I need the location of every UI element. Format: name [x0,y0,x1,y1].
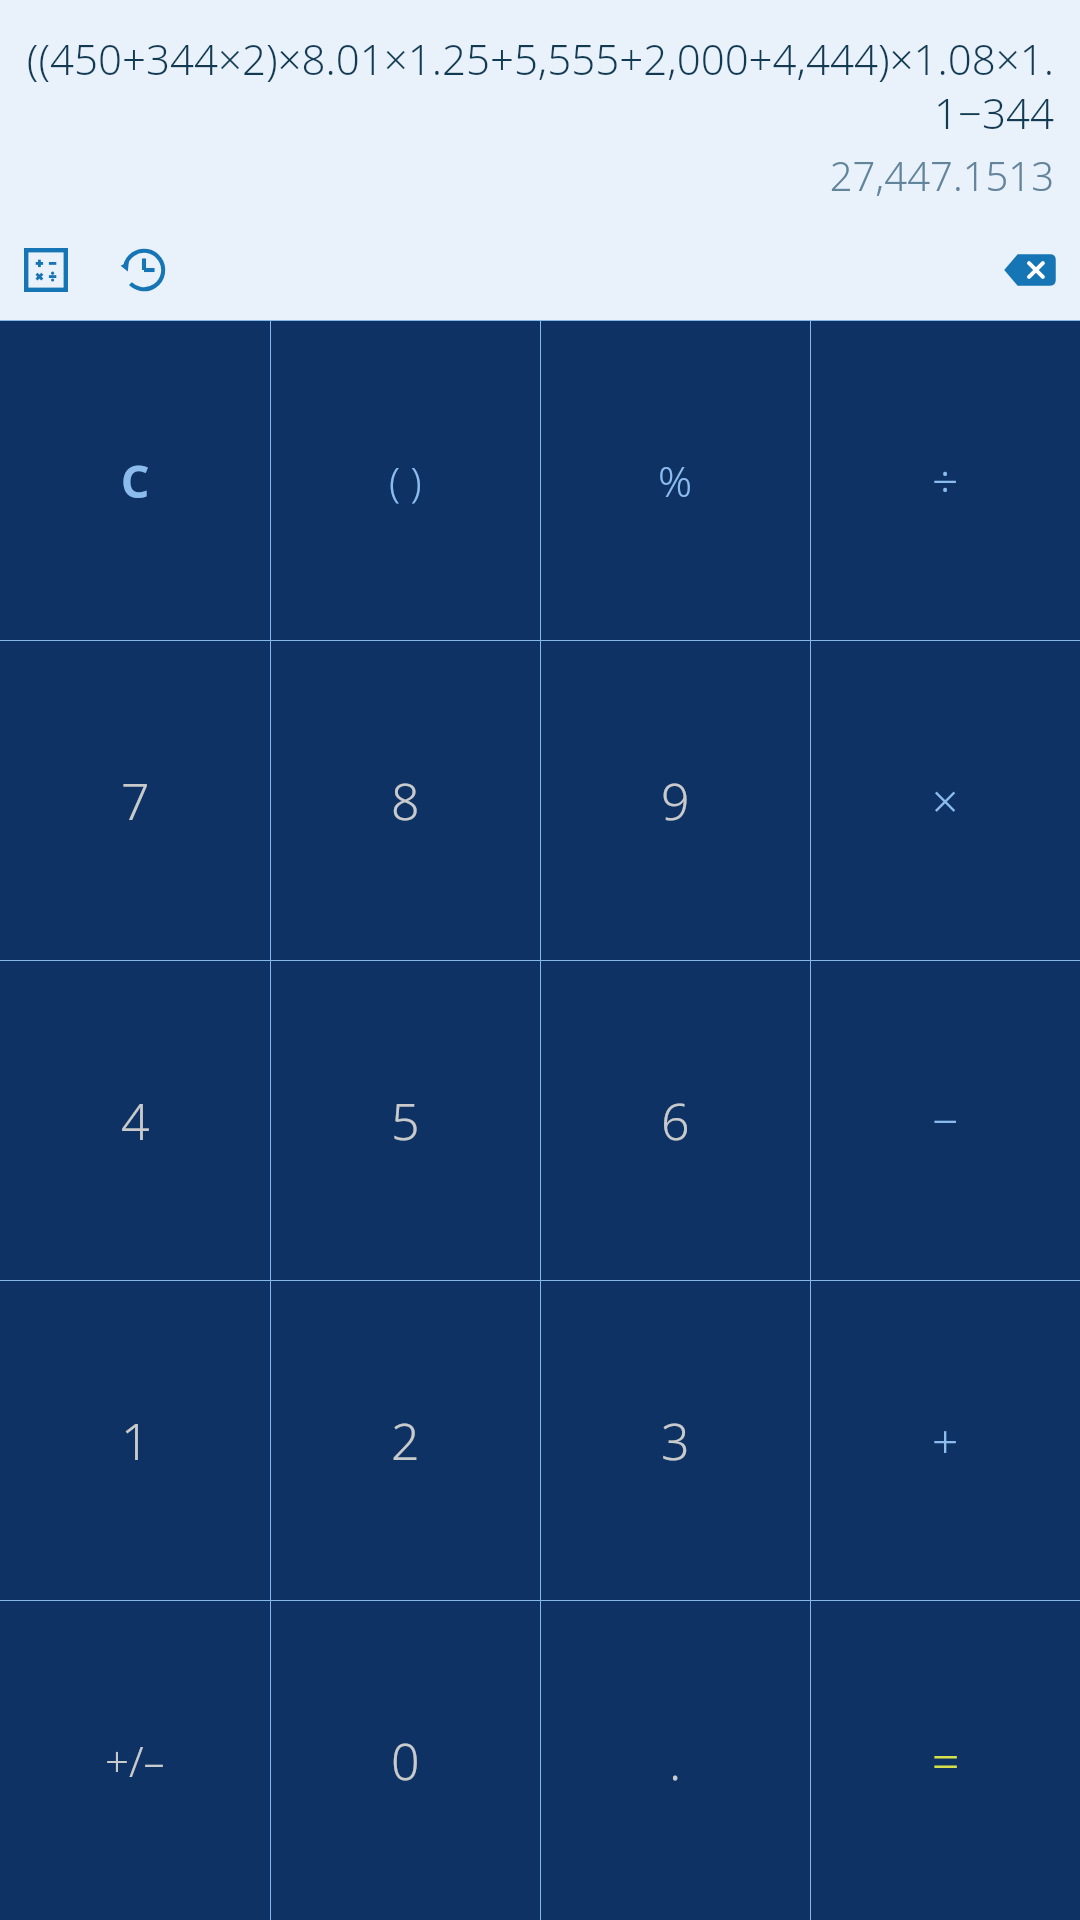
button[interactable]: 6 [541,961,810,1280]
button[interactable]: 4 [0,961,270,1280]
button[interactable]: 5 [271,961,540,1280]
button[interactable]: ( ) [271,321,540,640]
button[interactable]: = [811,1601,1080,1920]
button[interactable]: 9 [541,641,810,960]
button[interactable]: 7 [0,641,270,960]
staticText: ( ) [389,454,422,508]
staticText: 6 [661,1087,690,1155]
button[interactable]: Scientific calculator [14,238,78,302]
staticText: 7 [121,767,150,835]
button[interactable]: × [811,641,1080,960]
staticText: 9 [661,767,690,835]
staticText: ((450+344×2)×8.01×1.25+5,555+2,000+4,444… [24,30,1054,142]
button[interactable]: − [811,961,1080,1280]
button[interactable]: 0 [271,1601,540,1920]
staticText: ÷ [932,449,959,512]
button[interactable]: C [0,321,270,640]
staticText: = [932,1728,960,1793]
button[interactable]: 3 [541,1281,810,1600]
button[interactable]: History [112,238,176,302]
staticText: 3 [661,1407,690,1475]
button[interactable]: + [811,1281,1080,1600]
staticText: +/– [105,1732,165,1789]
staticText: 27,447.1513 [0,148,1054,202]
button[interactable]: 8 [271,641,540,960]
staticText: . [669,1727,682,1795]
staticText: 1 [121,1407,150,1475]
button[interactable]: ÷ [811,321,1080,640]
staticText: 4 [121,1087,150,1155]
staticText: % [658,452,693,509]
button[interactable]: Backspace [994,234,1066,306]
staticText: 8 [391,767,420,835]
button[interactable]: 2 [271,1281,540,1600]
staticText: + [932,1409,959,1472]
staticText: 2 [391,1407,420,1475]
staticText: C [121,451,150,511]
button[interactable]: 1 [0,1281,270,1600]
button[interactable]: % [541,321,810,640]
button[interactable]: +/– [0,1601,270,1920]
staticText: − [932,1089,959,1152]
staticText: 0 [391,1727,420,1795]
staticText: × [932,769,959,832]
staticText: 5 [391,1087,420,1155]
